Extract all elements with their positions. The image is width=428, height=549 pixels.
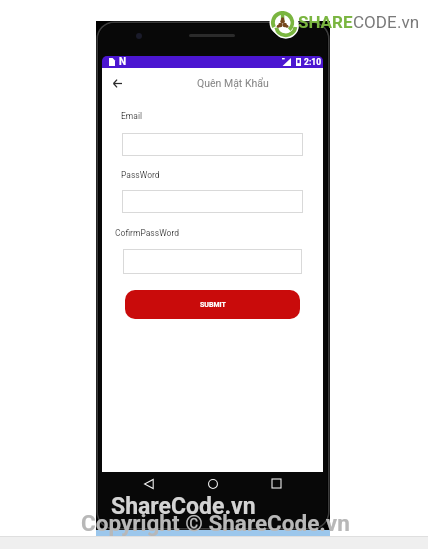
button[interactable]: Back xyxy=(108,74,126,92)
staticText: SUBMIT xyxy=(200,301,226,309)
button[interactable]: Recents xyxy=(272,479,281,488)
staticText: 2:10 xyxy=(304,57,322,67)
button[interactable] xyxy=(123,249,302,274)
button[interactable] xyxy=(122,190,303,213)
button[interactable] xyxy=(122,133,303,156)
staticText: N xyxy=(119,56,127,68)
staticText: ShareCode.vn xyxy=(111,493,256,520)
button[interactable]: Home xyxy=(208,479,218,489)
staticText: Email xyxy=(121,111,143,121)
staticText: PassWord xyxy=(121,170,160,180)
staticText: CODE xyxy=(353,12,397,32)
button[interactable]: SUBMIT xyxy=(125,290,300,319)
button[interactable]: Back xyxy=(144,479,154,489)
staticText: Quên Mật Khẩu xyxy=(197,77,269,89)
staticText: SHARE xyxy=(298,12,353,32)
staticText: CofirmPassWord xyxy=(115,228,179,238)
staticText: Copyright © ShareCode.vn xyxy=(81,510,350,536)
staticText: .vn xyxy=(397,12,420,32)
